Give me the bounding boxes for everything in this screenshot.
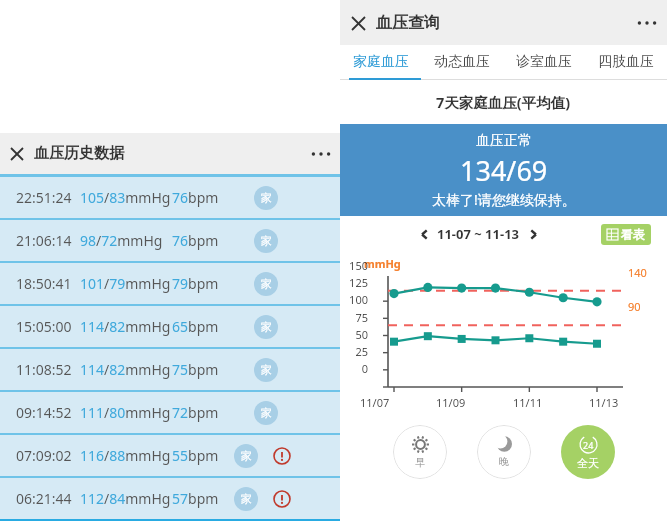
staticText: 家 [261, 234, 272, 248]
staticText: 140 [628, 265, 647, 280]
staticText: 早 [415, 456, 425, 469]
staticText: 11/13 [589, 395, 619, 410]
button[interactable]: More options [627, 3, 667, 43]
staticText: 血压历史数据 [34, 144, 124, 163]
button[interactable]: 动态血压 [421, 45, 503, 78]
staticText: 15:05:00 [16, 317, 72, 336]
staticText: 100 [338, 292, 368, 307]
staticText: 11/11 [513, 395, 543, 410]
button[interactable]: 晚 [477, 425, 531, 479]
staticText: 111/80mmHg [80, 403, 171, 422]
staticText: 112/84mmHg [80, 489, 171, 508]
button[interactable]: 07:09:02 [0, 435, 340, 476]
staticText: 11/09 [436, 395, 466, 410]
staticText: 114/82mmHg [80, 360, 171, 379]
staticText: 105/83mmHg [80, 188, 171, 207]
staticText: 11-07 ~ 11-13 [437, 225, 520, 243]
staticText: 诊室血压 [516, 53, 572, 71]
staticText: 134/69 [460, 152, 548, 189]
button[interactable]: 24 [561, 425, 615, 479]
staticText: 07:09:02 [16, 446, 72, 465]
staticText: 50 [338, 327, 368, 342]
staticText: 动态血压 [434, 53, 490, 71]
staticText: 114/82mmHg [80, 317, 171, 336]
staticText: 22:51:24 [16, 188, 72, 207]
staticText: 家庭血压 [353, 53, 409, 71]
staticText: 家 [241, 449, 252, 463]
button[interactable]: More options [302, 135, 340, 173]
staticText: 55bpm [172, 446, 219, 465]
staticText: 11:08:52 [16, 360, 72, 379]
button[interactable]: 22:51:24 [0, 177, 340, 218]
staticText: 血压正常 [476, 132, 532, 150]
staticText: 24 [583, 439, 594, 451]
staticText: 25 [338, 344, 368, 359]
staticText: 晚 [499, 455, 509, 468]
staticText: 06:21:44 [16, 489, 72, 508]
button[interactable]: 21:06:14 [0, 220, 340, 261]
button[interactable]: 18:50:41 [0, 263, 340, 304]
staticText: 家 [261, 320, 272, 334]
staticText: 0 [338, 361, 368, 376]
staticText: 101/79mmHg [80, 274, 171, 293]
staticText: 125 [338, 275, 368, 290]
staticText: 家 [261, 277, 272, 291]
staticText: 75 [338, 310, 368, 325]
staticText: 11/07 [360, 395, 390, 410]
button[interactable]: Close [340, 5, 376, 41]
staticText: 家 [261, 406, 272, 420]
button[interactable]: 09:14:52 [0, 392, 340, 433]
staticText: 血压查询 [376, 13, 440, 33]
staticText: 75bpm [172, 360, 219, 379]
staticText: 家 [261, 363, 272, 377]
staticText: 72bpm [172, 403, 219, 422]
button[interactable]: 家庭血压 [340, 45, 421, 78]
button[interactable]: 15:05:00 [0, 306, 340, 347]
staticText: 98/72mmHg [80, 231, 163, 250]
staticText: 7天家庭血压(平均值) [436, 92, 571, 112]
staticText: 全天 [577, 456, 599, 470]
staticText: 65bpm [172, 317, 219, 336]
staticText: 57bpm [172, 489, 219, 508]
staticText: 116/88mmHg [80, 446, 171, 465]
button[interactable]: Close [0, 137, 34, 171]
staticText: 90 [628, 299, 641, 314]
staticText: 看表 [621, 227, 645, 242]
button[interactable]: 06:21:44 [0, 478, 340, 519]
button[interactable]: 早 [393, 425, 447, 479]
staticText: 21:06:14 [16, 231, 72, 250]
staticText: 76bpm [172, 231, 219, 250]
staticText: 家 [261, 191, 272, 205]
button[interactable]: 诊室血压 [503, 45, 585, 78]
staticText: mmHg [364, 256, 401, 271]
staticText: 79bpm [172, 274, 219, 293]
button[interactable]: 看表 [601, 224, 651, 245]
button[interactable]: 11:08:52 [0, 349, 340, 390]
staticText: 150 [338, 258, 368, 273]
staticText: 太棒了!请您继续保持。 [432, 190, 576, 209]
staticText: 四肢血压 [598, 53, 654, 71]
staticText: 18:50:41 [16, 274, 72, 293]
staticText: 09:14:52 [16, 403, 72, 422]
button[interactable]: Previous week [412, 225, 545, 243]
staticText: 76bpm [172, 188, 219, 207]
button[interactable]: 四肢血压 [585, 45, 667, 78]
staticText: 家 [241, 492, 252, 506]
other: Previous week [416, 226, 432, 242]
other: Next week [525, 226, 541, 242]
